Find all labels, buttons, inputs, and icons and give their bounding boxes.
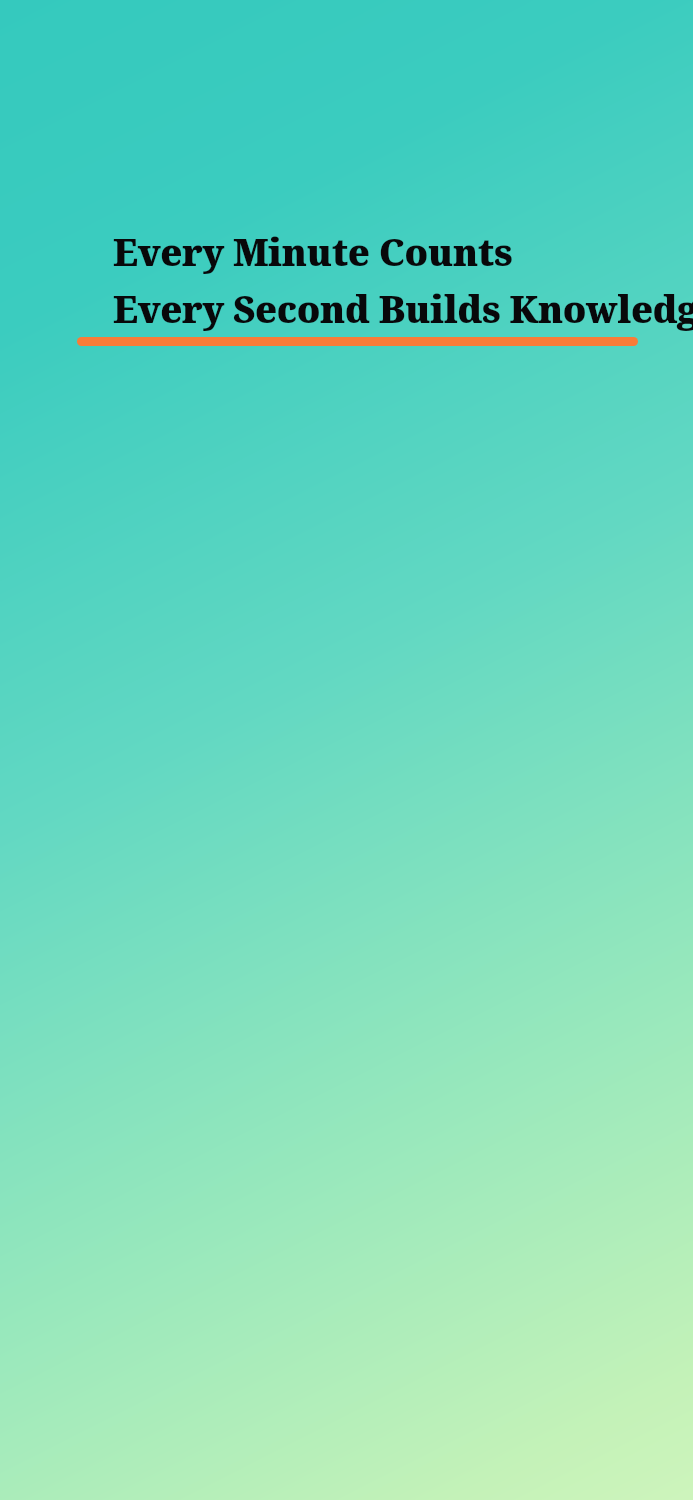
button[interactable]: Every Minute Counts <box>77 226 684 344</box>
other: Phone app preview <box>0 0 693 1500</box>
staticText: Every Minute Counts <box>113 226 513 276</box>
staticText: Every Second Builds Knowledge <box>113 283 693 333</box>
